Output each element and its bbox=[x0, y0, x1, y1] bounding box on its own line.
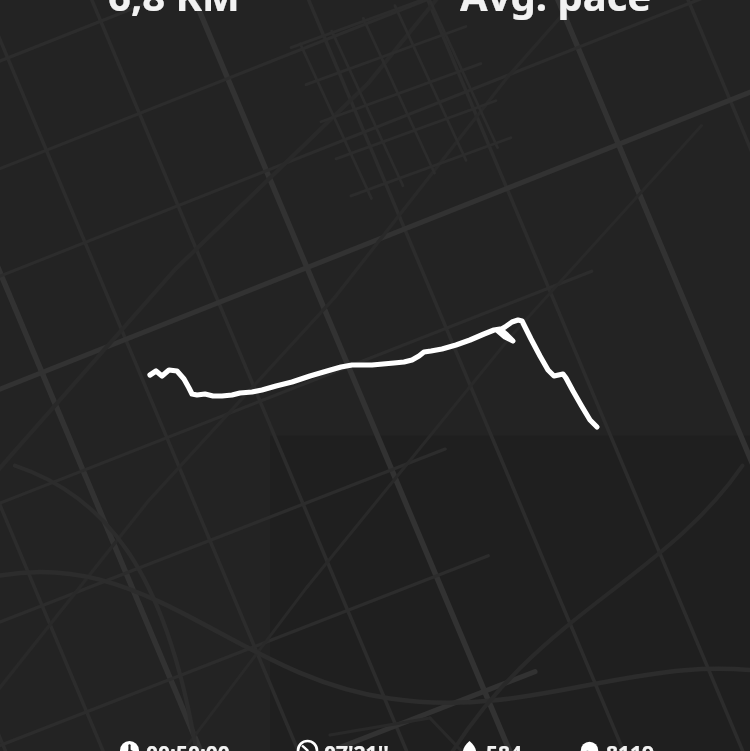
button[interactable]: Route map bbox=[0, 0, 750, 751]
